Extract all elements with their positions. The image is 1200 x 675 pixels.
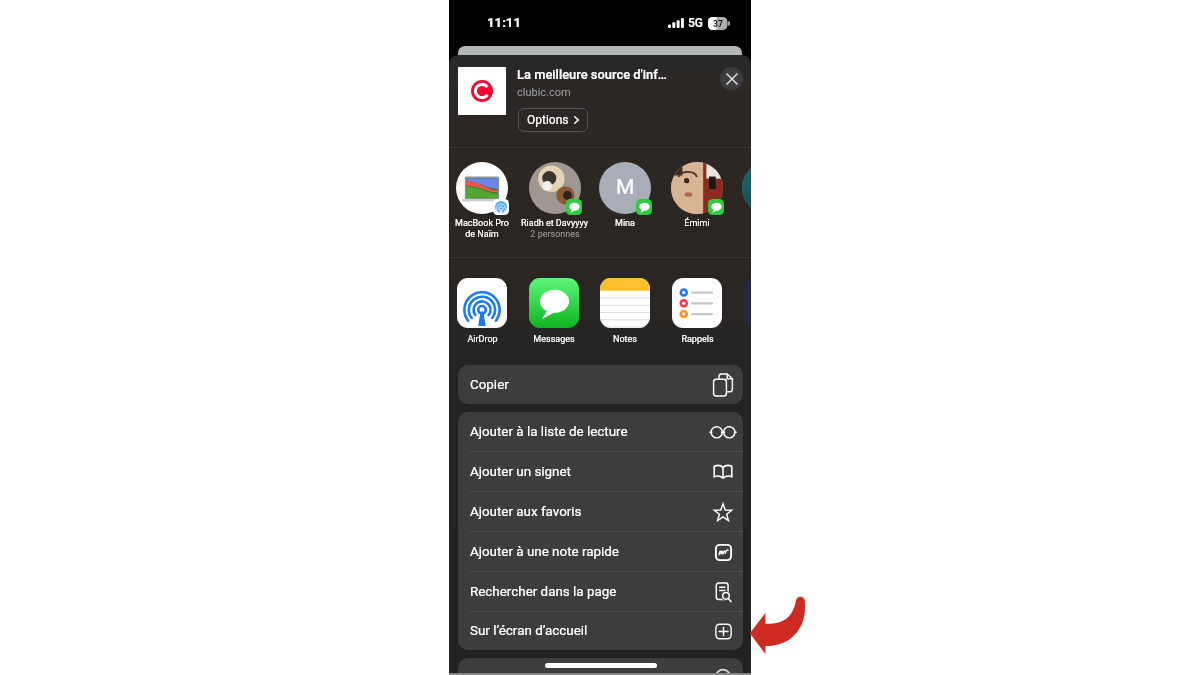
staticText: 5G (688, 16, 703, 30)
staticText: MacBook Pro de Naïm (455, 218, 509, 240)
staticText: AirDrop (467, 334, 498, 345)
button[interactable]: Notes (591, 278, 659, 353)
staticText: 37 (713, 19, 723, 29)
button[interactable]: Ajouter un signet (458, 452, 743, 492)
staticText: M (616, 175, 635, 200)
staticText: La meilleure source d'inf… (517, 67, 667, 82)
staticText: Ajouter un signet (470, 464, 709, 480)
staticText: 11:11 (487, 15, 521, 30)
staticText: Mina (615, 218, 635, 229)
button[interactable]: Partager avec Émimi (663, 162, 731, 260)
button[interactable]: Partager avec Mina (591, 162, 659, 260)
staticText: clubic.com (517, 86, 571, 99)
button[interactable]: Ajouter à une note rapide (458, 532, 743, 572)
staticText: Émimi (684, 218, 710, 229)
staticText: Notes (613, 334, 637, 345)
staticText: Ajouter aux favoris (470, 504, 709, 520)
staticText: 2 personnes (530, 229, 580, 240)
button[interactable]: Autre app (734, 278, 751, 353)
button[interactable]: Options (518, 108, 588, 132)
staticText: Rechercher dans la page (470, 584, 709, 600)
staticText: Ajouter à la liste de lecture (470, 424, 709, 440)
button[interactable]: Partager avec Riadh et Davyyyy (520, 162, 588, 260)
button[interactable]: Ajouter à la liste de lecture (458, 412, 743, 452)
staticText: Sur l’écran d’accueil (470, 623, 709, 639)
staticText: Ajouter à une note rapide (470, 544, 709, 560)
button[interactable]: Partager avec B (734, 162, 751, 260)
button[interactable]: Sur l’écran d’accueil (458, 612, 743, 650)
staticText: Copier (470, 377, 709, 393)
button[interactable]: Rappels (663, 278, 731, 353)
staticText: Messages (533, 334, 575, 345)
staticText: Options (527, 113, 569, 127)
button[interactable]: Rechercher dans la page (458, 572, 743, 612)
button[interactable]: Fermer (720, 67, 743, 90)
staticText: Rappels (681, 334, 714, 345)
button[interactable]: Copier (458, 365, 743, 404)
button[interactable]: Messages (520, 278, 588, 353)
button[interactable]: AirDrop (449, 278, 516, 353)
button[interactable]: Ajouter aux favoris (458, 492, 743, 532)
staticText: Riadh et Davyyyy (521, 218, 588, 229)
button[interactable]: Partager avec MacBook Pro de Naïm (449, 162, 516, 260)
